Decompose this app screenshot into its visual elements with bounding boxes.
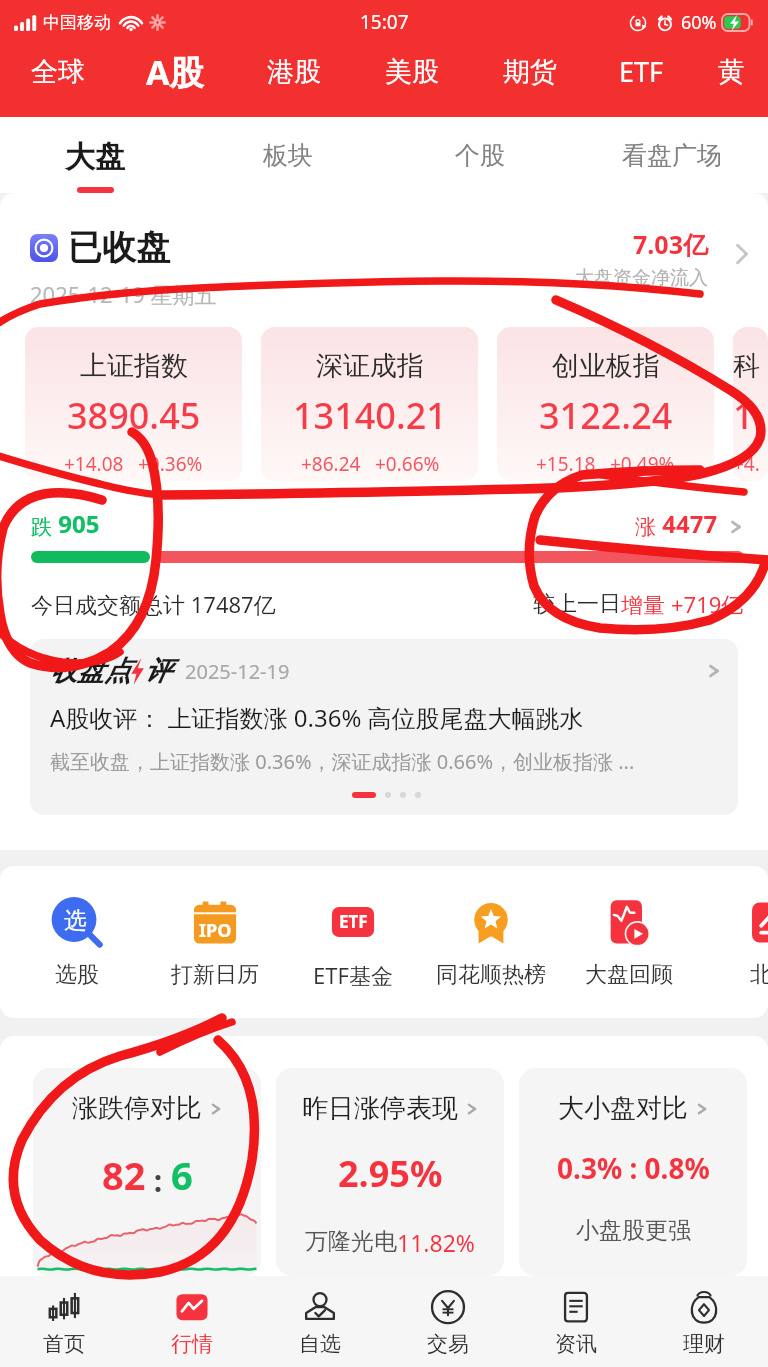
staticText: 较上一日 [533, 590, 621, 618]
staticText: +0.49% [610, 451, 675, 477]
button[interactable]: 港股 [234, 44, 353, 117]
button[interactable]: 大小盘对比 [519, 1068, 747, 1276]
staticText: ETF [339, 910, 368, 933]
staticText: 中国移动 [43, 12, 111, 33]
staticText: 82 [102, 1149, 146, 1201]
button[interactable]: 同花顺热榜 [422, 866, 560, 1018]
staticText: 上证指数 [80, 349, 188, 383]
staticText: A股收评： 上证指数涨 0.36% 高位股尾盘大幅跳水 [50, 701, 584, 734]
staticText: +719亿 [671, 589, 744, 619]
button[interactable]: 看盘广场 [587, 117, 757, 193]
button[interactable]: 自选 [256, 1276, 384, 1367]
staticText: 万隆光电 [305, 1227, 397, 1256]
staticText: 板块 [263, 140, 313, 171]
button[interactable]: IPO [146, 866, 284, 1018]
staticText: 2.95% [338, 1149, 443, 1198]
staticText: ETF基金 [313, 960, 393, 990]
staticText: 大盘 [65, 138, 125, 176]
staticText: 0.3% : 0.8% [557, 1149, 710, 1187]
staticText: +0.36% [138, 451, 203, 477]
staticText: 北交 [750, 961, 768, 989]
staticText: 全球 [31, 55, 85, 89]
button[interactable]: 大盘回顾 [560, 866, 698, 1018]
button[interactable]: 交易 [384, 1276, 512, 1367]
staticText: 期货 [503, 55, 557, 89]
staticText: 4477 [656, 507, 718, 540]
staticText: 选股 [55, 961, 99, 989]
staticText: 自选 [299, 1331, 341, 1357]
staticText: 大小盘对比 [558, 1092, 688, 1125]
staticText: 打新日历 [171, 961, 259, 989]
button[interactable]: 收盘点 [30, 639, 738, 815]
staticText: IPO [199, 918, 232, 943]
staticText: 15:07 [360, 9, 409, 35]
button[interactable]: 大盘 [10, 117, 180, 193]
staticText: 交易 [427, 1331, 469, 1357]
staticText: 行情 [171, 1331, 213, 1357]
button[interactable]: ETF [589, 44, 694, 117]
staticText: 2025-12-19 星期五 [30, 279, 217, 309]
staticText: 13140.21 [293, 391, 447, 440]
staticText: 大盘资金净流入 [575, 266, 708, 290]
staticText: 已收盘 [68, 226, 170, 269]
staticText: +0.66% [375, 451, 440, 477]
staticText: +14.08 [64, 451, 124, 477]
staticText: 6 [171, 1149, 193, 1201]
button[interactable]: 涨跌停对比 [33, 1068, 261, 1276]
button[interactable]: 科创50 [733, 327, 768, 481]
button[interactable]: 选 [8, 866, 146, 1018]
staticText: 资讯 [555, 1331, 597, 1357]
staticText: 港股 [267, 55, 321, 89]
button[interactable]: 全球 [0, 44, 116, 117]
staticText: 涨跌停对比 [72, 1092, 202, 1125]
staticText: 深证成指 [316, 349, 424, 383]
button[interactable]: 期货 [471, 44, 589, 117]
button[interactable]: 跌 [31, 507, 744, 619]
staticText: 评 [144, 654, 171, 688]
staticText: 3890.45 [67, 391, 201, 440]
staticText: 黄 [718, 55, 745, 89]
button[interactable]: 个股 [395, 117, 565, 193]
staticText: 11.82% [397, 1227, 475, 1258]
staticText: 创业板指 [552, 349, 660, 383]
staticText: 7.03亿 [633, 227, 708, 261]
button[interactable]: ETF [284, 866, 422, 1018]
button[interactable]: 创业板指 [497, 327, 714, 481]
staticText: 同花顺热榜 [436, 961, 546, 989]
staticText: A股 [146, 49, 204, 95]
staticText: 截至收盘，上证指数涨 0.36%，深证成指涨 0.66%，创业板指涨 ... [50, 748, 635, 775]
button[interactable]: 理财 [640, 1276, 768, 1367]
staticText: 涨 [635, 514, 656, 540]
staticText: 大盘回顾 [585, 961, 673, 989]
staticText: +15.18 [536, 451, 596, 477]
staticText: 905 [52, 507, 100, 540]
button[interactable]: 黄 [694, 44, 768, 117]
staticText: 昨日涨停表现 [302, 1092, 458, 1125]
button[interactable]: 上证指数 [25, 327, 242, 481]
button[interactable]: 已收盘 [30, 226, 752, 327]
staticText: 今日成交额总计 17487亿 [31, 589, 276, 619]
button[interactable]: 深证成指 [261, 327, 478, 481]
staticText: 60% [681, 10, 717, 35]
staticText: 美股 [385, 55, 439, 89]
staticText: 增量 [621, 589, 671, 619]
button[interactable]: 板块 [203, 117, 373, 193]
button[interactable]: 昨日涨停表现 [276, 1068, 504, 1276]
button[interactable]: 资讯 [512, 1276, 640, 1367]
staticText: ETF [619, 53, 664, 90]
staticText: 首页 [43, 1331, 85, 1357]
button[interactable]: 北交 [737, 866, 768, 1018]
staticText: 收盘点 [50, 654, 131, 688]
button[interactable]: A股 [116, 44, 234, 117]
button[interactable]: 首页 [0, 1276, 128, 1367]
staticText: 看盘广场 [622, 140, 722, 171]
staticText: +86.24 [301, 451, 361, 477]
staticText: 选 [64, 906, 87, 935]
staticText: +4.18 [733, 451, 768, 477]
staticText: 2025-12-19 [185, 658, 290, 685]
staticText: 科创50 [733, 349, 768, 383]
staticText: : [146, 1160, 171, 1201]
button[interactable]: 美股 [353, 44, 471, 117]
button[interactable]: 行情 [128, 1276, 256, 1367]
staticText: 1290.11 [733, 391, 768, 440]
